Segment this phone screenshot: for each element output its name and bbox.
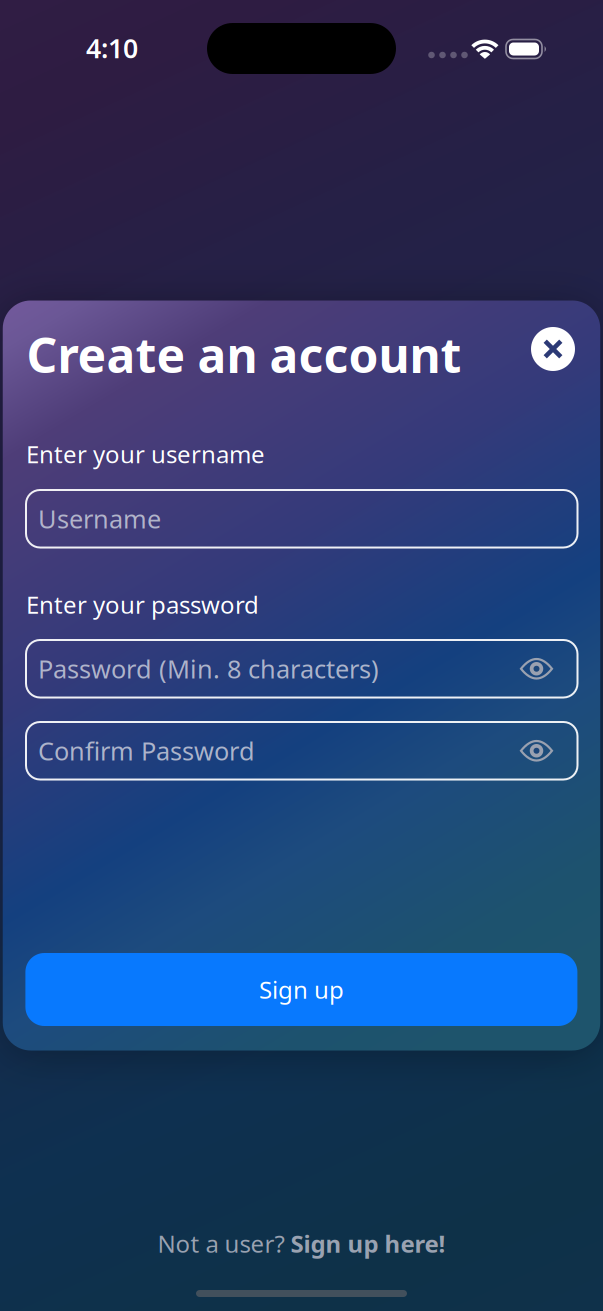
button[interactable]: Password (Min. 8 characters) <box>26 640 577 697</box>
staticText: Sign up <box>259 974 344 1005</box>
button[interactable]: Show password <box>519 740 553 762</box>
staticText: Enter your password <box>26 589 259 620</box>
button[interactable]: Show password <box>519 658 553 680</box>
staticText: Username <box>38 502 161 535</box>
button[interactable]: Sign up <box>25 953 577 1026</box>
staticText: 4:10 <box>86 30 138 66</box>
button[interactable]: Username <box>26 490 577 547</box>
staticText: Not a user? <box>157 1228 290 1259</box>
staticText: Password (Min. 8 characters) <box>38 652 379 685</box>
staticText: Sign up here! <box>290 1228 445 1259</box>
staticText: Enter your username <box>26 438 265 470</box>
button[interactable]: Close <box>531 327 575 371</box>
button[interactable]: Confirm Password <box>26 722 577 779</box>
staticText: Create an account <box>26 323 461 386</box>
button[interactable]: Sign up here! <box>290 1228 445 1259</box>
staticText: Confirm Password <box>38 734 255 767</box>
